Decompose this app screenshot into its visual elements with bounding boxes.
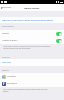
button[interactable]: Sign Out <box>0 59 64 66</box>
button[interactable]: Nearby Players <box>0 37 64 44</box>
staticText: Allow other players to find you and invi… <box>3 45 52 50</box>
staticText: GAME CENTER <box>2 25 14 27</box>
button[interactable]: Contacts <box>0 73 64 80</box>
staticText: Game Center <box>24 6 40 9</box>
staticText: Nearby Players <box>2 39 18 42</box>
staticText: Use contacts and Facebook to find friend… <box>3 88 52 93</box>
button[interactable]: f <box>0 80 64 87</box>
staticText: ACCOUNT <box>2 56 10 58</box>
button[interactable]: Settings <box>0 4 12 11</box>
staticText: Invites <box>2 32 9 35</box>
staticText: Sign in to use Game Center and play with… <box>2 19 53 22</box>
button[interactable]: Invites <box>0 30 64 37</box>
staticText: Sign Out <box>2 61 11 64</box>
staticText: FRIENDS <box>2 69 9 71</box>
staticText: Facebook <box>7 82 17 85</box>
staticText: Settings <box>2 6 11 9</box>
staticText: Contacts <box>7 75 16 78</box>
button[interactable]: Sign in to use Game Center and play with… <box>0 17 64 23</box>
staticText: f <box>3 82 5 86</box>
